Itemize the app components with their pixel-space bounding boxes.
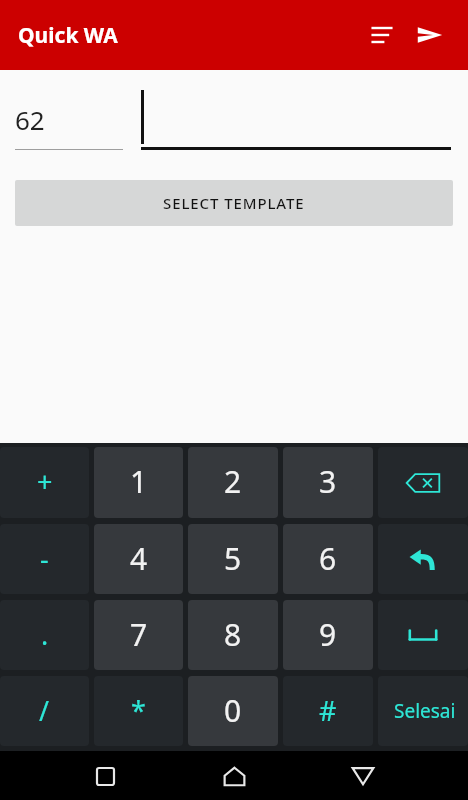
staticText: 9	[319, 614, 337, 655]
button[interactable]: 8	[188, 600, 278, 670]
staticText: SELECT TEMPLATE	[163, 193, 305, 213]
staticText: 62	[15, 102, 45, 137]
staticText: 8	[224, 614, 242, 655]
staticText: Selesai	[394, 698, 456, 724]
staticText: +	[37, 463, 53, 500]
button[interactable]: 4	[94, 524, 183, 594]
button[interactable]: 5	[188, 524, 278, 594]
button[interactable]: Space	[378, 600, 468, 670]
button[interactable]: Recents	[81, 752, 129, 800]
staticText: 3	[319, 461, 337, 502]
staticText: /	[39, 692, 50, 729]
button[interactable]: 9	[283, 600, 373, 670]
button[interactable]: Back	[339, 752, 387, 800]
button[interactable]: Enter	[378, 524, 468, 594]
staticText: *	[131, 692, 146, 729]
staticText: #	[319, 692, 337, 729]
button[interactable]: 2	[188, 447, 278, 518]
staticText: .	[41, 616, 49, 653]
staticText: 7	[130, 614, 148, 655]
button[interactable]: #	[283, 676, 373, 746]
staticText: 6	[319, 538, 337, 579]
staticText: Quick WA	[18, 21, 118, 50]
button[interactable]: .	[0, 600, 89, 670]
staticText: 2	[224, 461, 242, 502]
staticText: 1	[130, 461, 148, 502]
staticText: 4	[130, 538, 148, 579]
button[interactable]: /	[0, 676, 89, 746]
button[interactable]: +	[0, 447, 89, 518]
button[interactable]: 3	[283, 447, 373, 518]
button[interactable]: 62	[15, 88, 123, 150]
button[interactable]: 1	[94, 447, 183, 518]
button[interactable]: Selesai	[378, 676, 468, 746]
button[interactable]	[141, 88, 451, 150]
button[interactable]: 0	[188, 676, 278, 746]
button[interactable]: 7	[94, 600, 183, 670]
button[interactable]: *	[94, 676, 183, 746]
button[interactable]: Send	[406, 11, 454, 59]
button[interactable]: -	[0, 524, 89, 594]
button[interactable]: SELECT TEMPLATE	[15, 180, 453, 226]
button[interactable]: Sort	[358, 11, 406, 59]
staticText: 0	[224, 690, 242, 731]
button[interactable]: Backspace	[378, 447, 468, 518]
staticText: 5	[224, 538, 242, 579]
staticText: -	[40, 540, 49, 577]
button[interactable]: 6	[283, 524, 373, 594]
button[interactable]: Home	[210, 752, 258, 800]
